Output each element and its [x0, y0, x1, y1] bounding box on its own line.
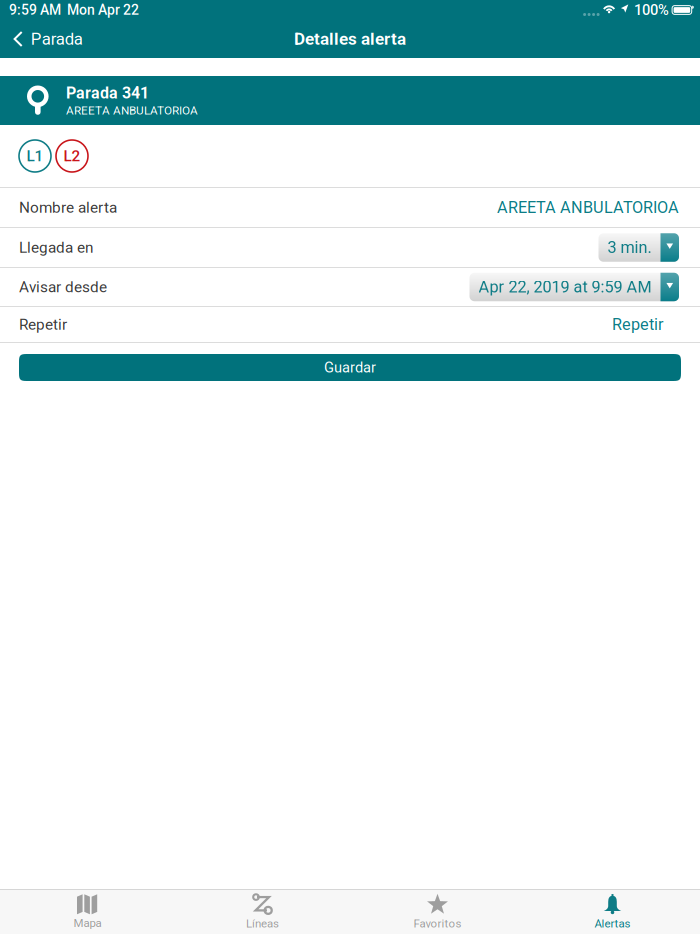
button[interactable]: Apr 22, 2019 at 9:59 AM: [469, 273, 679, 301]
button[interactable]: Guardar: [0, 343, 700, 381]
staticText: Parada: [31, 29, 83, 49]
button[interactable]: L2: [56, 140, 88, 172]
staticText: Detalles alerta: [294, 29, 406, 49]
staticText: Llegada en: [19, 238, 93, 256]
staticText: AREETA ANBULATORIOA: [497, 198, 679, 217]
button[interactable]: Mapa: [0, 890, 175, 934]
staticText: L2: [63, 147, 80, 165]
staticText: 100%: [634, 1, 669, 19]
button[interactable]: 3 min.: [598, 233, 679, 262]
button[interactable]: Favoritos: [350, 890, 525, 934]
button[interactable]: Líneas: [175, 890, 350, 934]
staticText: Repetir: [612, 315, 664, 334]
staticText: Mon Apr 22: [61, 2, 139, 18]
button[interactable]: Parada: [0, 20, 97, 58]
staticText: Apr 22, 2019 at 9:59 AM: [478, 277, 651, 297]
staticText: 9:59 AM: [9, 2, 61, 18]
staticText: Líneas: [246, 917, 279, 930]
staticText: L1: [26, 147, 43, 165]
staticText: 3 min.: [607, 238, 651, 257]
staticText: Guardar: [324, 359, 376, 376]
staticText: AREETA ANBULATORIOA: [66, 103, 198, 117]
staticText: Favoritos: [413, 917, 461, 930]
staticText: Mapa: [73, 916, 101, 930]
staticText: Repetir: [19, 315, 67, 333]
staticText: Alertas: [594, 917, 630, 930]
staticText: Parada 341: [66, 84, 149, 103]
button[interactable]: L1: [19, 140, 51, 172]
staticText: Nombre alerta: [19, 198, 117, 216]
button[interactable]: Alertas: [525, 890, 700, 934]
button[interactable]: Repetir: [612, 315, 664, 334]
staticText: Avisar desde: [19, 278, 107, 296]
